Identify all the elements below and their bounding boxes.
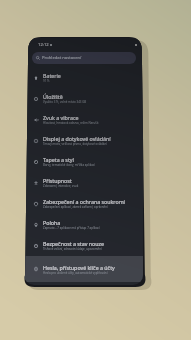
staticText: Poloha — [43, 219, 61, 226]
staticText: Hesla pro uložené účty, automatické vypl… — [43, 271, 108, 275]
staticText: Zapnuto – 7 aplikace má přístup 7 aplika… — [43, 226, 100, 230]
staticText: Barvy, tematické ikony, mřížka aplikací — [43, 163, 95, 167]
button[interactable]: Úložiště — [24, 88, 143, 109]
staticText: Zabezpečení a ochrana soukromí — [43, 198, 125, 205]
staticText: Tapeta a styl — [43, 156, 74, 163]
staticText: Hlasitost, hmatová odezva, režim Nerušit — [43, 121, 99, 125]
button[interactable]: Prohledat nastavení — [32, 52, 136, 64]
button[interactable]: Zabezpečení a ochrana soukromí — [24, 193, 143, 214]
staticText: 91 % — [43, 79, 50, 83]
button[interactable]: Tapeta a styl — [24, 151, 143, 172]
staticText: Tísňové volání, zdravotní údaje, upozorn… — [43, 247, 102, 251]
staticText: Tmavý motiv, velikost písma, dotykové ov… — [43, 142, 108, 146]
button[interactable]: Hesla, přístupové klíče a účty — [24, 256, 143, 282]
button[interactable]: Bezpečnost a stav nouze — [24, 235, 143, 256]
button[interactable]: Přístupnost — [24, 172, 143, 193]
staticText: Baterie — [43, 72, 61, 79]
staticText: Hesla, přístupové klíče a účty — [43, 264, 115, 271]
button[interactable]: Poloha — [24, 214, 143, 235]
button[interactable]: Zvuk a vibrace — [24, 109, 143, 130]
staticText: Zabezpečení aplikací, zámek zařízení, op… — [43, 205, 108, 209]
staticText: Displej a dotykové ovládání — [43, 135, 111, 142]
staticText: Přístupnost — [43, 177, 72, 184]
staticText: Zvuk a vibrace — [43, 114, 79, 121]
staticText: Prohledat nastavení — [42, 55, 82, 61]
staticText: Bezpečnost a stav nouze — [43, 240, 105, 247]
button[interactable]: Displej a dotykové ovládání — [24, 130, 143, 151]
staticText: Využito 3 %, volné místo 343 GB — [43, 100, 87, 104]
staticText: 12:12 — [38, 42, 49, 48]
button[interactable]: Baterie — [24, 67, 143, 88]
staticText: Úložiště — [43, 93, 63, 100]
staticText: Zobrazení, interakce, zvuk — [43, 184, 79, 188]
